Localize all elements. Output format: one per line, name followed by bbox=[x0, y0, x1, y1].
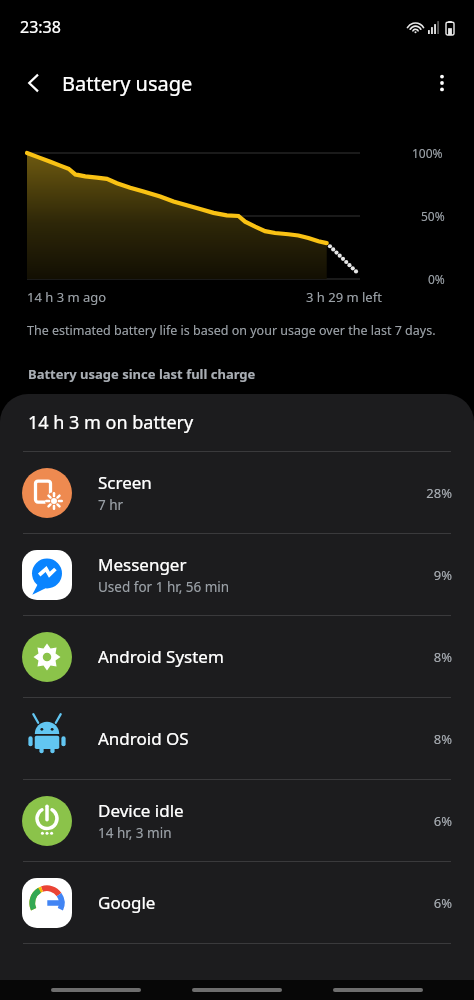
button[interactable]: Screen bbox=[0, 452, 474, 533]
staticText: 14 h 3 m ago bbox=[27, 288, 107, 306]
staticText: 8% bbox=[414, 648, 452, 666]
staticText: 3 h 29 m left bbox=[306, 288, 382, 306]
staticText: Google bbox=[98, 891, 156, 914]
staticText: Battery usage bbox=[62, 70, 193, 97]
button[interactable]: Navigation bbox=[51, 988, 141, 992]
staticText: 28% bbox=[414, 484, 452, 502]
button[interactable]: More options bbox=[420, 61, 464, 105]
staticText: Device idle bbox=[98, 799, 184, 822]
button[interactable]: Navigation bbox=[192, 988, 282, 992]
staticText: Screen bbox=[98, 471, 152, 494]
staticText: 8% bbox=[414, 730, 452, 748]
button[interactable]: Google bbox=[0, 862, 474, 943]
staticText: 9% bbox=[414, 566, 452, 584]
staticText: Used for 1 hr, 56 min bbox=[98, 578, 230, 596]
staticText: Android System bbox=[98, 645, 224, 668]
button[interactable]: Android OS bbox=[0, 698, 474, 779]
staticText: Battery usage since last full charge bbox=[28, 365, 256, 383]
staticText: 7 hr bbox=[98, 496, 124, 514]
button[interactable]: Android System bbox=[0, 616, 474, 697]
staticText: 23:38 bbox=[20, 16, 61, 38]
staticText: 50% bbox=[421, 208, 445, 224]
button[interactable]: Navigation bbox=[333, 988, 423, 992]
button[interactable]: Device idle bbox=[0, 780, 474, 861]
staticText: 6% bbox=[414, 812, 452, 830]
staticText: The estimated battery life is based on y… bbox=[27, 322, 436, 339]
staticText: 6% bbox=[414, 894, 452, 912]
staticText: 100% bbox=[412, 145, 443, 161]
staticText: Messenger bbox=[98, 553, 187, 576]
staticText: 14 h 3 m on battery bbox=[28, 410, 194, 435]
staticText: 14 hr, 3 min bbox=[98, 824, 172, 842]
button[interactable]: Messenger bbox=[0, 534, 474, 615]
staticText: Android OS bbox=[98, 727, 189, 750]
button[interactable]: Back bbox=[12, 61, 56, 105]
staticText: 0% bbox=[428, 271, 445, 287]
